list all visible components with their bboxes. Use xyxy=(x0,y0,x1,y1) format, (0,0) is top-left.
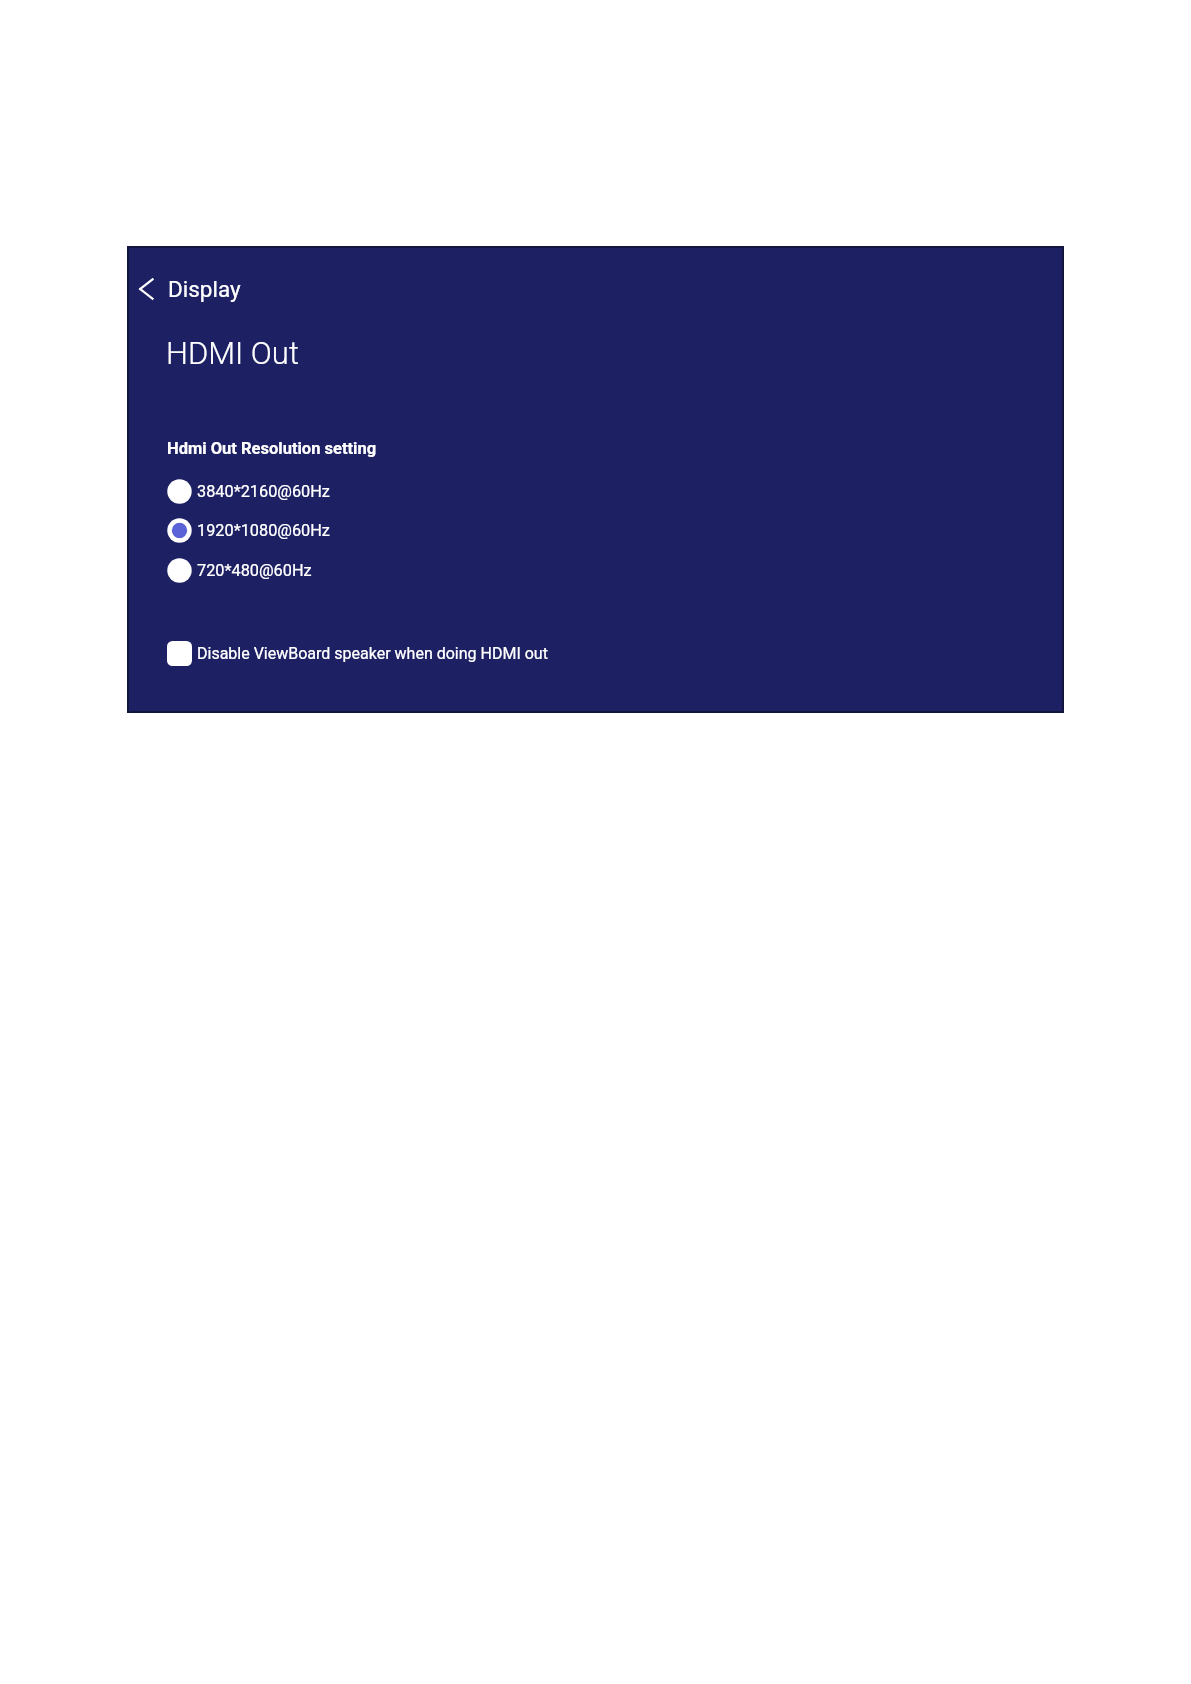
other: Back xyxy=(125,272,159,306)
button[interactable]: 720*480@60Hz xyxy=(167,557,312,583)
button[interactable]: Back xyxy=(125,269,241,309)
staticText: 1920*1080@60Hz xyxy=(197,521,330,540)
staticText: HDMI Out xyxy=(166,335,299,371)
staticText: Disable ViewBoard speaker when doing HDM… xyxy=(197,644,548,663)
button[interactable]: Disable ViewBoard speaker when doing HDM… xyxy=(167,640,548,666)
staticText: 720*480@60Hz xyxy=(197,561,312,580)
staticText: 3840*2160@60Hz xyxy=(197,482,330,501)
staticText: Display xyxy=(168,276,241,302)
button[interactable]: 1920*1080@60Hz xyxy=(167,517,330,543)
staticText: Hdmi Out Resolution setting xyxy=(167,439,377,458)
button[interactable]: 3840*2160@60Hz xyxy=(167,478,330,504)
